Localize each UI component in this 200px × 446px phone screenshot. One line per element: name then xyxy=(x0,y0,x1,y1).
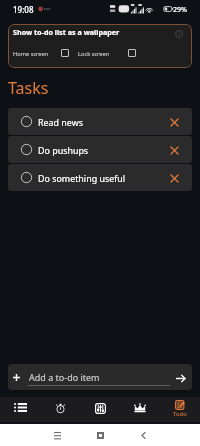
button[interactable]: Do pushups xyxy=(8,136,192,163)
button[interactable]: Todo xyxy=(160,397,200,422)
staticText: 19:08 xyxy=(13,4,34,15)
button[interactable]: Habits xyxy=(80,397,120,422)
button[interactable]: List xyxy=(0,397,40,422)
button[interactable]: Delete task xyxy=(164,168,184,188)
button[interactable]: Info xyxy=(172,27,185,40)
staticText: Todo xyxy=(173,410,187,418)
button[interactable]: Add a to-do item xyxy=(28,367,170,387)
staticText: Lock screen xyxy=(78,50,110,58)
staticText: Read news xyxy=(38,116,83,128)
button[interactable]: Add xyxy=(9,370,23,384)
staticText: Tasks xyxy=(8,77,49,99)
button[interactable]: Delete task xyxy=(164,140,184,160)
button[interactable]: Recents xyxy=(45,424,69,446)
button[interactable]: Home xyxy=(88,424,112,446)
button[interactable]: Read news xyxy=(8,108,192,135)
staticText: 29% xyxy=(173,5,187,15)
button[interactable]: Submit xyxy=(172,370,188,386)
button[interactable]: Delete task xyxy=(164,112,184,132)
staticText: Home screen xyxy=(13,50,49,58)
staticText: Add a to-do item xyxy=(29,371,100,383)
staticText: Show to-do list as a wallpaper xyxy=(13,27,120,37)
button[interactable]: Lock screen xyxy=(78,47,110,55)
staticText: Do pushups xyxy=(38,144,89,156)
button[interactable]: Timer xyxy=(40,397,80,422)
button[interactable]: Back xyxy=(131,424,155,446)
button[interactable]: Do something useful xyxy=(8,164,192,191)
staticText: Do something useful xyxy=(38,172,126,184)
button[interactable]: Rewards xyxy=(120,397,160,422)
button[interactable]: Home screen xyxy=(13,47,49,55)
